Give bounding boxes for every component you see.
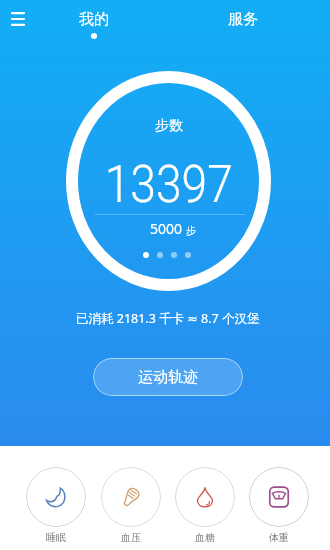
staticText: 步 <box>186 224 196 237</box>
staticText: 服务 <box>228 10 258 29</box>
button[interactable]: 血压 <box>101 467 161 545</box>
button[interactable]: 睡眠 <box>26 467 86 545</box>
staticText: 体重 <box>269 531 289 544</box>
button[interactable]: Menu <box>4 6 32 32</box>
staticText: 运动轨迹 <box>138 368 198 387</box>
staticText: 血压 <box>121 531 141 544</box>
button[interactable]: 血糖 <box>175 467 235 545</box>
staticText: 5000 <box>150 219 183 238</box>
staticText: 睡眠 <box>46 531 66 544</box>
staticText: 血糖 <box>195 531 215 544</box>
staticText: 步数 <box>155 117 183 135</box>
button[interactable]: 我的 <box>64 10 124 42</box>
staticText: 13397 <box>105 155 233 215</box>
button[interactable]: 服务 <box>213 10 273 38</box>
staticText: 已消耗 2181.3 千卡 ≈ 8.7 个汉堡 <box>76 310 260 327</box>
staticText: 我的 <box>79 10 109 29</box>
button[interactable]: 运动轨迹 <box>93 358 243 396</box>
button[interactable]: 体重 <box>249 467 309 545</box>
